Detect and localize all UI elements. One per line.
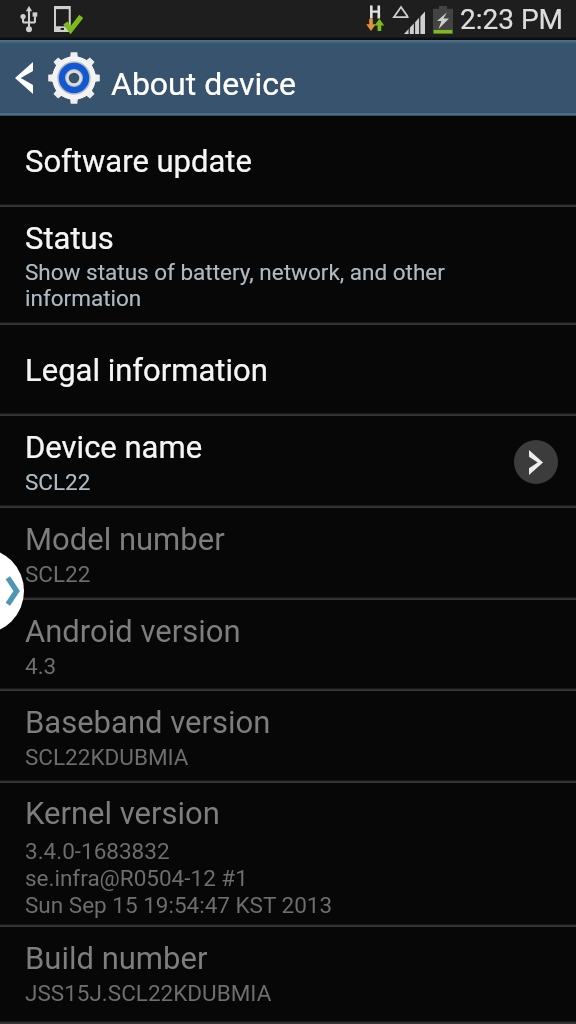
staticText: Device name (25, 429, 203, 465)
button[interactable]: Edit device name (514, 440, 558, 484)
button[interactable]: Open side panel (0, 548, 24, 634)
staticText: 4.3 (25, 653, 57, 679)
staticText: SCL22KDUBMIA (25, 744, 189, 770)
staticText: Baseband version (25, 704, 271, 740)
button[interactable]: Status (0, 207, 576, 325)
staticText: se.infra@R0504-12 #1 (25, 865, 248, 891)
staticText: Status (25, 220, 114, 256)
staticText: About device (111, 65, 296, 103)
button[interactable]: Android version (0, 600, 576, 691)
button[interactable]: Baseband version (0, 691, 576, 783)
staticText: JSS15J.SCL22KDUBMIA (25, 980, 272, 1006)
staticText: 2:23 PM (460, 3, 564, 36)
button[interactable]: Device name (0, 416, 576, 508)
staticText: Show status of battery, network, and oth… (25, 259, 445, 285)
button[interactable]: Build number (0, 927, 576, 1024)
staticText: Model number (25, 521, 225, 557)
staticText: Kernel version (25, 795, 220, 831)
staticText: H (369, 2, 382, 22)
button[interactable]: Model number (0, 508, 576, 600)
staticText: Android version (25, 613, 241, 649)
staticText: Legal information (25, 352, 268, 388)
button[interactable]: Kernel version (0, 783, 576, 927)
staticText: SCL22 (25, 469, 91, 495)
button[interactable]: Software update (0, 116, 576, 207)
staticText: 3.4.0-1683832 (25, 838, 170, 864)
staticText: SCL22 (25, 561, 91, 587)
staticText: Sun Sep 15 19:54:47 KST 2013 (25, 892, 333, 918)
button[interactable]: Legal information (0, 325, 576, 416)
button[interactable]: Navigate up (0, 40, 48, 116)
staticText: information (25, 285, 142, 311)
staticText: Build number (25, 940, 208, 976)
staticText: Software update (25, 143, 252, 179)
